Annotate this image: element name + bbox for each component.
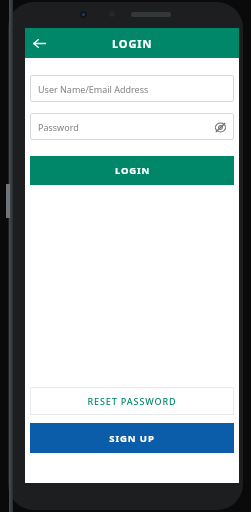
button[interactable]: Back [26, 30, 52, 56]
button[interactable]: Password [30, 113, 234, 140]
button[interactable]: RESET PASSWORD [30, 387, 234, 415]
staticText: Password [38, 121, 79, 133]
button[interactable]: LOGIN [30, 156, 234, 185]
staticText: User Name/Email Address [38, 83, 149, 95]
staticText: LOGIN [112, 36, 153, 51]
button[interactable]: Show password [210, 117, 230, 137]
button[interactable]: SIGN UP [30, 423, 234, 453]
staticText: LOGIN [115, 164, 150, 177]
button[interactable]: User Name/Email Address [30, 75, 234, 102]
staticText: RESET PASSWORD [87, 395, 177, 407]
staticText: SIGN UP [109, 432, 155, 445]
